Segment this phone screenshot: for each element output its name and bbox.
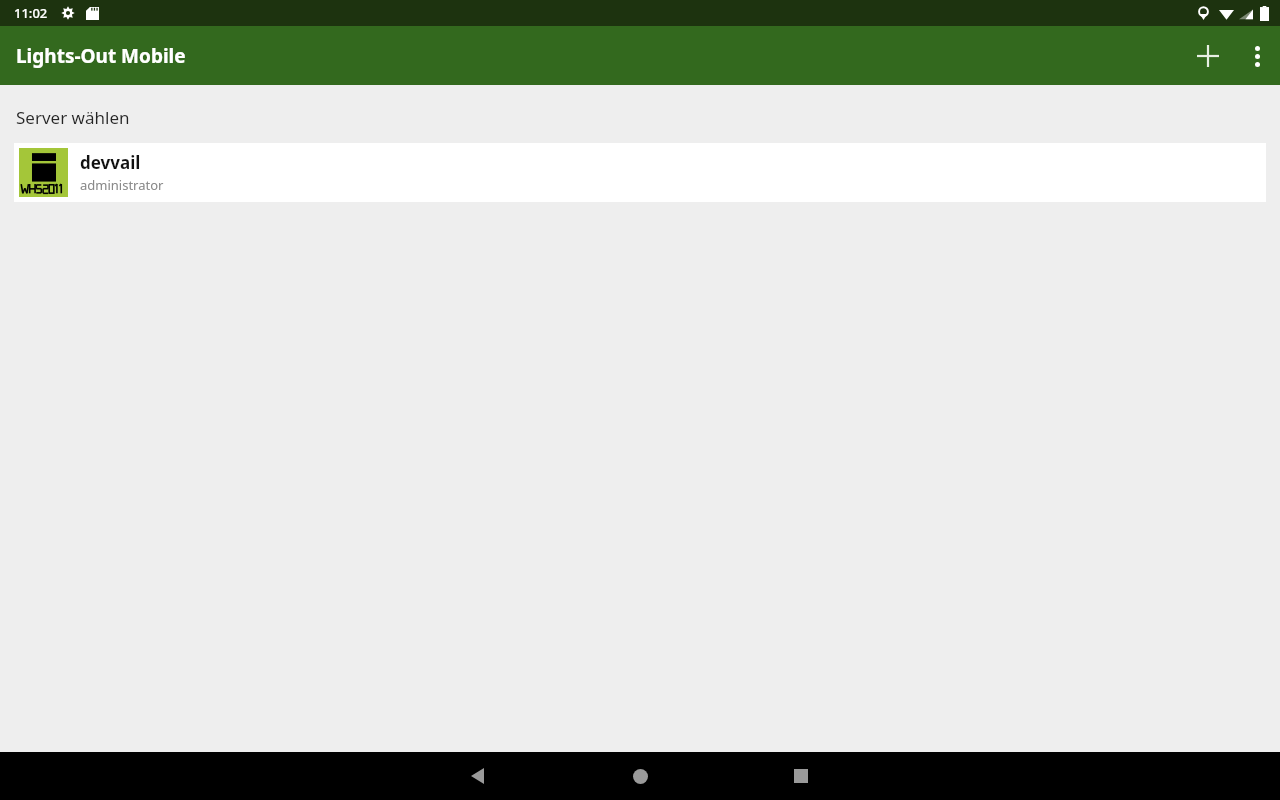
button[interactable]: Add server [1182,30,1234,82]
button[interactable]: Recent apps [777,752,825,800]
button[interactable]: More options [1234,33,1280,79]
staticText: administrator [80,176,164,194]
staticText: 11:02 [14,4,48,22]
button[interactable]: Home [616,752,664,800]
button[interactable]: devvail [14,143,1266,202]
staticText: Lights-Out Mobile [16,43,186,69]
staticText: Server wählen [16,106,130,129]
button[interactable]: Back [453,752,501,800]
staticText: devvail [80,151,141,174]
